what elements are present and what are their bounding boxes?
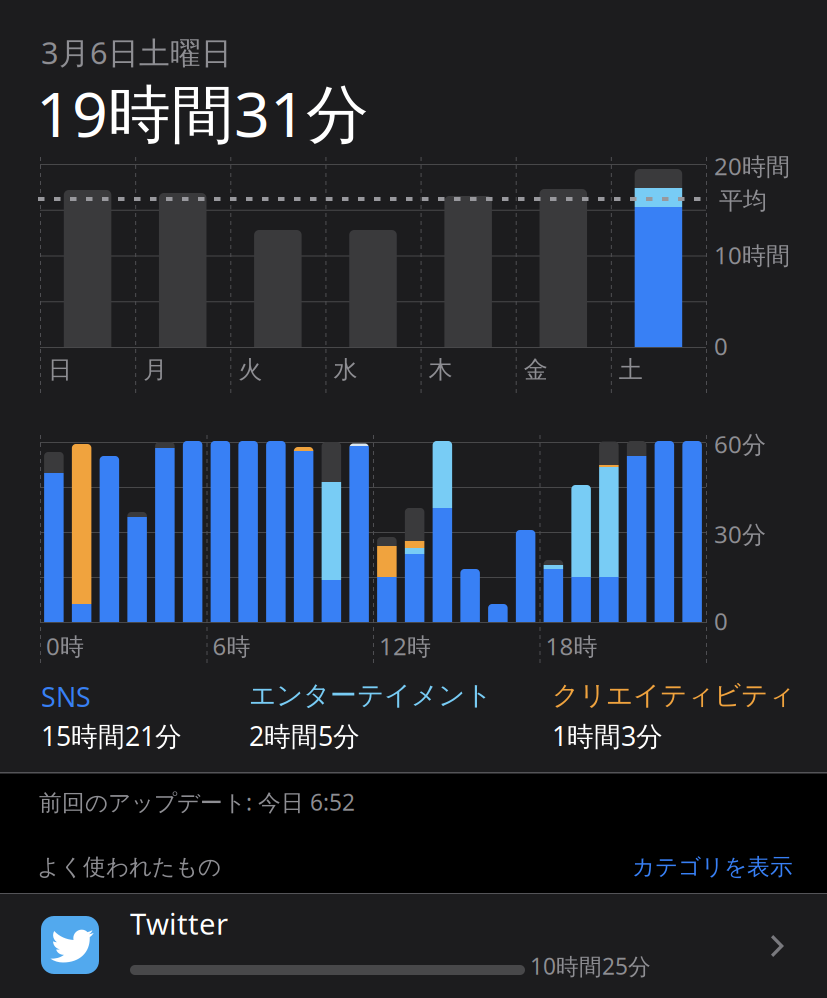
staticText: 平均 xyxy=(719,186,767,215)
staticText: 6時 xyxy=(212,630,250,662)
staticText: 0 xyxy=(714,330,728,362)
staticText: カテゴリを表示 xyxy=(632,853,793,881)
staticText: 12時 xyxy=(379,630,431,662)
staticText: 1時間3分 xyxy=(552,718,663,753)
staticText: 30分 xyxy=(714,518,766,550)
staticText: 水 xyxy=(333,355,357,384)
staticText: 0時 xyxy=(46,630,84,662)
staticText: 2時間5分 xyxy=(249,718,360,753)
staticText: エンターテイメント xyxy=(249,679,492,712)
staticText: 土 xyxy=(619,355,643,384)
staticText: よく使われたもの xyxy=(37,853,221,881)
staticText: 月 xyxy=(143,355,167,384)
staticText: SNS xyxy=(41,679,91,714)
staticText: 木 xyxy=(429,355,453,384)
staticText: 0 xyxy=(714,605,728,637)
staticText: 20時間 xyxy=(714,150,790,182)
staticText: 18時 xyxy=(545,630,597,662)
staticText: 火 xyxy=(238,355,262,384)
staticText: 日 xyxy=(48,355,72,384)
staticText: 金 xyxy=(524,355,548,384)
staticText: 3月6日土曜日 xyxy=(41,32,232,73)
staticText: 前回のアップデート: 今日 6:52 xyxy=(39,787,355,817)
staticText: 10時間 xyxy=(714,239,790,271)
staticText: 60分 xyxy=(714,428,766,460)
staticText: クリエイティビティ xyxy=(552,679,795,712)
staticText: 19時間31分 xyxy=(36,71,369,154)
staticText: 15時間21分 xyxy=(41,718,182,753)
staticText: Twitter xyxy=(130,904,228,943)
staticText: 10時間25分 xyxy=(530,951,651,981)
button[interactable]: Twitter xyxy=(0,894,827,998)
